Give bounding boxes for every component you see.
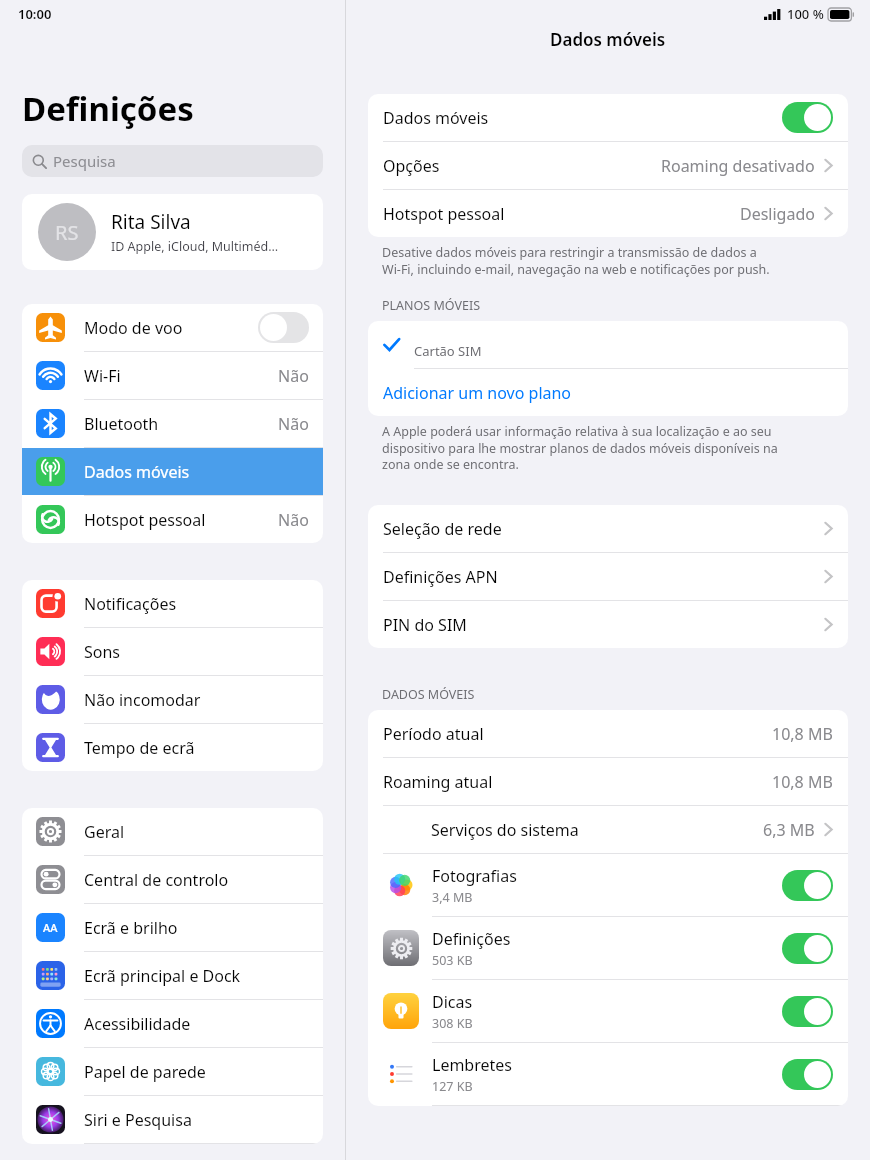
- staticText: Tempo de ecrã: [84, 737, 309, 759]
- button[interactable]: Ligado: [782, 870, 833, 901]
- staticText: PLANOS MÓVEIS: [382, 297, 481, 314]
- button[interactable]: Definições APN: [368, 553, 848, 600]
- button[interactable]: Ecrã principal e Dock: [22, 952, 323, 999]
- button[interactable]: Dados móveis: [22, 448, 323, 495]
- button[interactable]: Acessibilidade: [22, 1000, 323, 1047]
- staticText: Ecrã principal e Dock: [84, 965, 309, 987]
- button[interactable]: Notificações: [22, 580, 323, 627]
- button[interactable]: Ligado: [782, 996, 833, 1027]
- staticText: 100 %: [787, 5, 824, 23]
- staticText: PIN do SIM: [383, 614, 815, 636]
- staticText: Não: [278, 413, 309, 435]
- staticText: Definições APN: [383, 566, 815, 588]
- staticText: A Apple poderá usar informação relativa …: [382, 423, 778, 472]
- staticText: Seleção de rede: [383, 518, 815, 540]
- staticText: Hotspot pessoal: [84, 509, 278, 531]
- staticText: AA: [43, 920, 58, 935]
- button[interactable]: Bluetooth: [22, 400, 323, 447]
- staticText: Serviços do sistema: [431, 819, 763, 841]
- button[interactable]: Siri e Pesquisa: [22, 1096, 323, 1143]
- button[interactable]: Ligado: [782, 102, 833, 133]
- button[interactable]: Hotspot pessoal: [368, 190, 848, 237]
- staticText: Dados móveis: [550, 28, 666, 51]
- staticText: Período atual: [383, 723, 772, 745]
- staticText: Roaming desativado: [661, 155, 815, 177]
- staticText: DADOS MÓVEIS: [382, 686, 475, 703]
- button[interactable]: RS: [22, 194, 323, 270]
- button[interactable]: Definições: [368, 917, 848, 979]
- button[interactable]: Sons: [22, 628, 323, 675]
- staticText: Sons: [84, 641, 309, 663]
- staticText: Roaming atual: [383, 771, 772, 793]
- staticText: 10:00: [18, 5, 52, 23]
- staticText: Não incomodar: [84, 689, 309, 711]
- staticText: 127 KB: [432, 1078, 473, 1095]
- staticText: 10,8 MB: [772, 723, 833, 745]
- staticText: 10,8 MB: [772, 771, 833, 793]
- staticText: 503 KB: [432, 952, 473, 969]
- button[interactable]: Papel de parede: [22, 1048, 323, 1095]
- staticText: Lembretes: [432, 1054, 512, 1076]
- button[interactable]: AA: [22, 904, 323, 951]
- staticText: Dados móveis: [383, 107, 782, 129]
- staticText: Definições: [22, 86, 194, 131]
- staticText: 3,4 MB: [432, 889, 473, 906]
- staticText: Acessibilidade: [84, 1013, 309, 1035]
- button[interactable]: Ligado: [782, 933, 833, 964]
- button[interactable]: Geral: [22, 808, 323, 855]
- staticText: ID Apple, iCloud, Multiméd…: [111, 238, 279, 255]
- staticText: Siri e Pesquisa: [84, 1109, 309, 1131]
- button[interactable]: Hotspot pessoal: [22, 496, 323, 543]
- staticText: Desligado: [740, 203, 815, 225]
- staticText: Dicas: [432, 991, 473, 1013]
- button[interactable]: Roaming atual: [368, 758, 848, 805]
- button[interactable]: Ligado: [782, 1059, 833, 1090]
- staticText: Desative dados móveis para restringir a …: [382, 244, 770, 277]
- staticText: Bluetooth: [84, 413, 278, 435]
- staticText: Hotspot pessoal: [383, 203, 740, 225]
- button[interactable]: Wi-Fi: [22, 352, 323, 399]
- button[interactable]: Seleção de rede: [368, 505, 848, 552]
- staticText: Fotografias: [432, 865, 517, 887]
- button[interactable]: Pesquisa: [22, 145, 323, 177]
- staticText: 308 KB: [432, 1015, 473, 1032]
- staticText: Dados móveis: [84, 461, 309, 483]
- staticText: Geral: [84, 821, 309, 843]
- staticText: Papel de parede: [84, 1061, 309, 1083]
- staticText: Modo de voo: [84, 317, 258, 339]
- staticText: Ecrã e brilho: [84, 917, 309, 939]
- staticText: Opções: [383, 155, 661, 177]
- button[interactable]: Lembretes: [368, 1043, 848, 1105]
- staticText: Notificações: [84, 593, 309, 615]
- staticText: RS: [55, 219, 79, 246]
- staticText: Definições: [432, 928, 511, 950]
- staticText: Não: [278, 509, 309, 531]
- button[interactable]: Central de controlo: [22, 856, 323, 903]
- button[interactable]: Não incomodar: [22, 676, 323, 723]
- button[interactable]: Tempo de ecrã: [22, 724, 323, 771]
- button[interactable]: Dicas: [368, 980, 848, 1042]
- button[interactable]: Desligado: [258, 312, 309, 343]
- button[interactable]: Período atual: [368, 710, 848, 757]
- button[interactable]: Opções: [368, 142, 848, 189]
- button[interactable]: Adicionar um novo plano: [368, 369, 848, 416]
- button[interactable]: Dados móveis: [368, 94, 848, 141]
- button[interactable]: Cartão SIM: [368, 321, 848, 369]
- staticText: Central de controlo: [84, 869, 309, 891]
- button[interactable]: Serviços do sistema: [368, 806, 848, 853]
- staticText: Wi-Fi: [84, 365, 278, 387]
- button[interactable]: Modo de voo: [22, 304, 323, 351]
- staticText: Pesquisa: [53, 151, 116, 171]
- staticText: Rita Silva: [111, 209, 191, 235]
- button[interactable]: Fotografias: [368, 854, 848, 916]
- staticText: Cartão SIM: [414, 342, 482, 360]
- button[interactable]: PIN do SIM: [368, 601, 848, 648]
- staticText: Não: [278, 365, 309, 387]
- staticText: 6,3 MB: [763, 819, 815, 841]
- staticText: Adicionar um novo plano: [383, 382, 572, 404]
